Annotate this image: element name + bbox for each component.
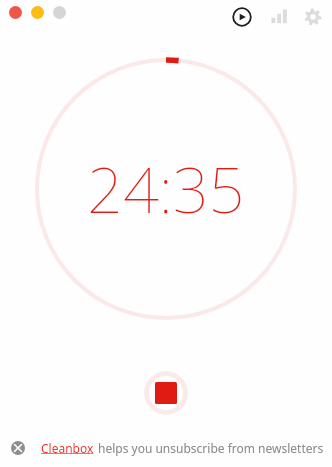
button[interactable]: Cleanbox	[41, 440, 94, 456]
button[interactable]: Window control	[53, 6, 66, 19]
button[interactable]: Statistics	[266, 4, 292, 30]
button[interactable]: Close	[7, 437, 29, 459]
button[interactable]: Play	[229, 4, 255, 30]
button[interactable]: Settings	[300, 4, 326, 30]
button[interactable]: Window control	[31, 6, 44, 19]
staticText: helps you unsubscribe from newsletters	[98, 440, 324, 456]
button[interactable]: Window control	[9, 6, 22, 19]
button[interactable]: Stop	[144, 371, 188, 415]
staticText: 24:35	[87, 146, 245, 232]
staticText: Cleanbox	[41, 440, 94, 456]
